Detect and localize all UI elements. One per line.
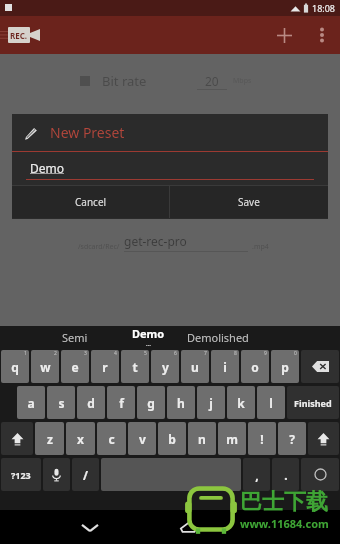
staticText: m xyxy=(226,431,238,447)
button[interactable]: m xyxy=(218,422,246,455)
button[interactable]: ?123 xyxy=(1,458,41,491)
staticText: 3 xyxy=(84,350,87,357)
button[interactable]: ? xyxy=(278,422,306,455)
button[interactable]: c xyxy=(97,422,126,455)
button[interactable]: t xyxy=(121,350,149,383)
staticText: 5 xyxy=(144,350,147,357)
button[interactable]: Backspace xyxy=(301,350,339,383)
button[interactable]: s xyxy=(47,386,75,419)
staticText: Cancel xyxy=(75,195,107,209)
staticText: 8 xyxy=(234,350,237,357)
staticText: 4 xyxy=(114,350,117,357)
staticText: n xyxy=(198,431,206,447)
staticText: b xyxy=(168,431,176,447)
staticText: , xyxy=(255,467,259,483)
staticText: Demo xyxy=(30,160,65,176)
staticText: h xyxy=(177,395,185,411)
button[interactable]: l xyxy=(257,386,285,419)
button[interactable]: Add preset xyxy=(266,17,302,53)
staticText: Filename xyxy=(104,189,160,207)
staticText: 20 xyxy=(205,73,219,89)
staticText: ! xyxy=(260,431,264,447)
staticText: REC. xyxy=(10,30,28,41)
button[interactable]: b xyxy=(158,422,186,455)
button[interactable]: q xyxy=(1,350,29,383)
staticText: l xyxy=(269,395,273,411)
staticText: j xyxy=(209,395,213,411)
staticText: k xyxy=(237,395,245,411)
staticText: f xyxy=(119,395,124,411)
button[interactable]: Finished xyxy=(287,386,339,419)
button[interactable]: h xyxy=(167,386,195,419)
button[interactable]: i xyxy=(211,350,239,383)
button[interactable]: Emoji xyxy=(301,458,339,491)
staticText: Semi xyxy=(62,330,88,345)
button[interactable]: , xyxy=(243,458,270,491)
button[interactable]: Cancel xyxy=(12,186,169,218)
button[interactable]: v xyxy=(128,422,156,455)
button[interactable]: f xyxy=(107,386,135,419)
button[interactable]: ! xyxy=(248,422,276,455)
staticText: Demo xyxy=(132,326,165,341)
button[interactable]: Demolished xyxy=(187,330,249,345)
staticText: e xyxy=(71,359,79,375)
button[interactable]: Save xyxy=(170,186,328,218)
button[interactable]: r xyxy=(91,350,119,383)
button[interactable]: e xyxy=(61,350,89,383)
button[interactable]: Semi xyxy=(62,330,88,345)
staticText: 9 xyxy=(264,350,267,357)
staticText: 0 xyxy=(294,350,297,357)
staticText: q xyxy=(11,359,19,375)
button[interactable]: . xyxy=(272,458,299,491)
staticText: t xyxy=(132,359,138,375)
button[interactable]: Hide keyboard xyxy=(73,510,107,544)
button[interactable]: Voice input xyxy=(43,458,70,491)
staticText: x xyxy=(77,431,84,447)
button[interactable]: k xyxy=(227,386,255,419)
button[interactable]: n xyxy=(188,422,216,455)
staticText: p xyxy=(281,359,289,375)
staticText: v xyxy=(139,431,146,447)
staticText: 7 xyxy=(204,350,207,357)
button[interactable]: Space xyxy=(101,458,241,491)
button[interactable]: Shift xyxy=(1,422,33,455)
button[interactable]: z xyxy=(35,422,64,455)
button[interactable]: / xyxy=(72,458,99,491)
staticText: a xyxy=(27,395,35,411)
button[interactable]: j xyxy=(197,386,225,419)
staticText: s xyxy=(58,395,65,411)
button[interactable]: Home xyxy=(171,510,205,544)
staticText: ?123 xyxy=(11,469,31,481)
staticText: d xyxy=(87,395,95,411)
staticText: 18:08 xyxy=(312,2,336,14)
button[interactable]: x xyxy=(66,422,95,455)
staticText: .mp4 xyxy=(252,242,269,252)
staticText: Finished xyxy=(294,397,332,409)
button[interactable]: App logo xyxy=(8,27,40,43)
button[interactable]: g xyxy=(137,386,165,419)
staticText: Mbps xyxy=(233,76,252,86)
button[interactable]: Demo xyxy=(132,326,165,348)
staticText: Bit rate xyxy=(102,72,147,90)
staticText: r xyxy=(102,359,108,375)
staticText: u xyxy=(191,359,199,375)
staticText: ? xyxy=(289,431,295,447)
button[interactable]: a xyxy=(17,386,45,419)
button[interactable]: Demo xyxy=(12,152,328,185)
button[interactable]: More options xyxy=(304,17,340,53)
staticText: c xyxy=(108,431,115,447)
staticText: z xyxy=(47,431,53,447)
button[interactable]: p xyxy=(271,350,299,383)
staticText: i xyxy=(223,359,227,375)
staticText: 巴士下载 xyxy=(240,488,328,516)
staticText: 1 xyxy=(24,350,27,357)
button[interactable]: o xyxy=(241,350,269,383)
button[interactable]: get-rec-pro xyxy=(124,233,248,252)
staticText: 2 xyxy=(54,350,57,357)
button[interactable]: u xyxy=(181,350,209,383)
button[interactable]: y xyxy=(151,350,179,383)
button[interactable]: d xyxy=(77,386,105,419)
button[interactable]: Shift xyxy=(308,422,339,455)
button[interactable]: w xyxy=(31,350,59,383)
button[interactable]: Bit rate xyxy=(0,66,340,96)
